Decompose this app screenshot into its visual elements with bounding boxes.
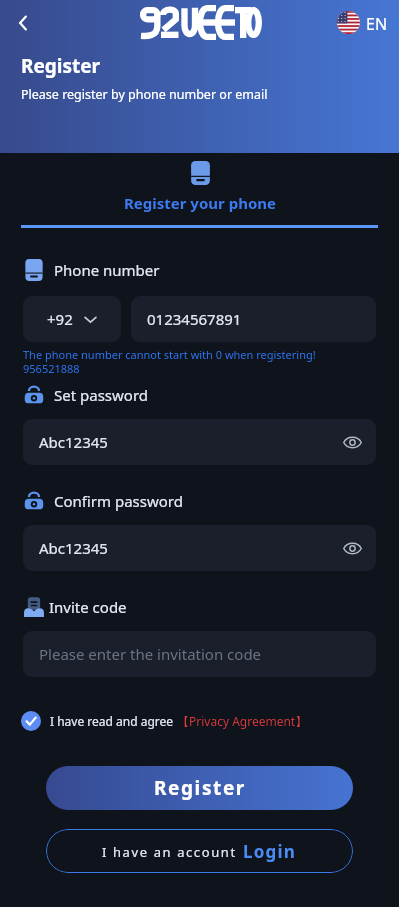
staticText: Abc12345 bbox=[39, 538, 108, 558]
staticText: +92 bbox=[47, 309, 73, 329]
button[interactable]: Abc12345 bbox=[23, 419, 376, 465]
staticText: EN bbox=[366, 13, 388, 35]
staticText: Register bbox=[21, 53, 101, 79]
staticText: I have read and agree bbox=[50, 713, 174, 729]
staticText: 01234567891 bbox=[147, 309, 242, 329]
staticText: Confirm password bbox=[54, 491, 183, 511]
button[interactable]: EN bbox=[337, 11, 388, 34]
staticText: 【Privacy Agreement】 bbox=[177, 713, 308, 729]
staticText: Abc12345 bbox=[39, 432, 108, 452]
staticText: Please register by phone number or email bbox=[21, 86, 268, 103]
button[interactable]: Show password bbox=[337, 427, 367, 457]
button[interactable]: Register bbox=[46, 766, 353, 810]
button[interactable]: I have an account bbox=[46, 829, 353, 873]
staticText: Register bbox=[154, 775, 246, 801]
button[interactable]: Register your phone bbox=[124, 161, 276, 213]
button[interactable]: I have read and agree bbox=[21, 711, 308, 731]
button[interactable]: Show password bbox=[337, 533, 367, 563]
staticText: Set password bbox=[54, 385, 149, 405]
button[interactable]: Back bbox=[6, 6, 39, 39]
button[interactable]: Please enter the invitation code bbox=[23, 631, 376, 677]
staticText: Phone number bbox=[54, 260, 160, 280]
other: 92JEETO logo bbox=[139, 7, 262, 38]
button[interactable]: +92 bbox=[23, 296, 121, 342]
staticText: Invite code bbox=[49, 597, 127, 617]
button[interactable]: 01234567891 bbox=[131, 296, 376, 342]
staticText: The phone number cannot start with 0 whe… bbox=[23, 347, 316, 376]
staticText: Register your phone bbox=[124, 193, 276, 213]
staticText: Login bbox=[243, 840, 297, 863]
staticText: I have an account bbox=[102, 843, 237, 861]
button[interactable]: Abc12345 bbox=[23, 525, 376, 571]
staticText: Please enter the invitation code bbox=[39, 644, 262, 664]
